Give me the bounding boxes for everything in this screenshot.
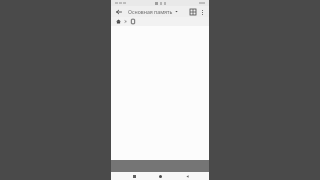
button[interactable]: Home [115, 18, 122, 25]
staticText: Основная память [128, 8, 173, 15]
button[interactable]: Back [114, 7, 123, 16]
button[interactable]: Recent apps [130, 172, 138, 180]
button[interactable]: Back [183, 172, 191, 180]
button[interactable]: Основная память [128, 8, 186, 15]
button[interactable]: Home [156, 172, 164, 180]
button[interactable]: Internal storage [129, 18, 136, 25]
button[interactable]: Grid view [188, 7, 197, 16]
button[interactable]: More options [198, 8, 206, 16]
